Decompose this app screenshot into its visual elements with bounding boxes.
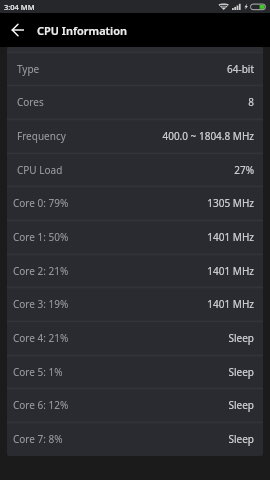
staticText: 1401 MHz bbox=[207, 297, 254, 311]
staticText: 27% bbox=[234, 163, 254, 177]
button[interactable]: CPU Load bbox=[7, 153, 263, 186]
staticText: CPU Load bbox=[17, 163, 63, 177]
button[interactable]: Cores bbox=[7, 85, 263, 119]
button[interactable]: Core 5: 1% bbox=[7, 355, 263, 388]
button[interactable]: Back bbox=[0, 13, 35, 47]
staticText: 400.0 ~ 1804.8 MHz bbox=[162, 129, 254, 143]
staticText: Core 7: 8% bbox=[13, 432, 63, 446]
button[interactable]: Core 0: 79% bbox=[7, 186, 263, 220]
button[interactable]: Core 2: 21% bbox=[7, 254, 263, 287]
button[interactable]: Core 3: 19% bbox=[7, 287, 263, 321]
button[interactable]: Type bbox=[7, 52, 263, 85]
staticText: Sleep bbox=[228, 432, 254, 446]
staticText: Core 4: 21% bbox=[13, 331, 69, 345]
staticText: Core 6: 12% bbox=[13, 398, 69, 412]
staticText: Core 0: 79% bbox=[13, 196, 69, 210]
staticText: Core 5: 1% bbox=[13, 365, 63, 379]
staticText: Frequency bbox=[17, 129, 66, 143]
staticText: Core 2: 21% bbox=[13, 264, 69, 278]
staticText: 1401 MHz bbox=[207, 264, 254, 278]
staticText: CPU Information bbox=[37, 23, 127, 38]
staticText: Sleep bbox=[228, 331, 254, 345]
staticText: Sleep bbox=[228, 365, 254, 379]
button[interactable]: Core 1: 50% bbox=[7, 220, 263, 254]
staticText: Sleep bbox=[228, 398, 254, 412]
staticText: 64-bit bbox=[227, 62, 254, 76]
staticText: Core 1: 50% bbox=[13, 230, 69, 244]
staticText: Core 3: 19% bbox=[13, 297, 69, 311]
button[interactable]: Frequency bbox=[7, 119, 263, 153]
button[interactable]: Core 6: 12% bbox=[7, 388, 263, 422]
staticText: 8 bbox=[248, 95, 254, 109]
staticText: 1305 MHz bbox=[207, 196, 254, 210]
button[interactable]: Core 4: 21% bbox=[7, 321, 263, 355]
staticText: 3:04 MM bbox=[4, 2, 35, 12]
button[interactable]: Core 7: 8% bbox=[7, 422, 263, 456]
staticText: Type bbox=[17, 62, 40, 76]
staticText: 1401 MHz bbox=[207, 230, 254, 244]
staticText: Cores bbox=[17, 95, 44, 109]
